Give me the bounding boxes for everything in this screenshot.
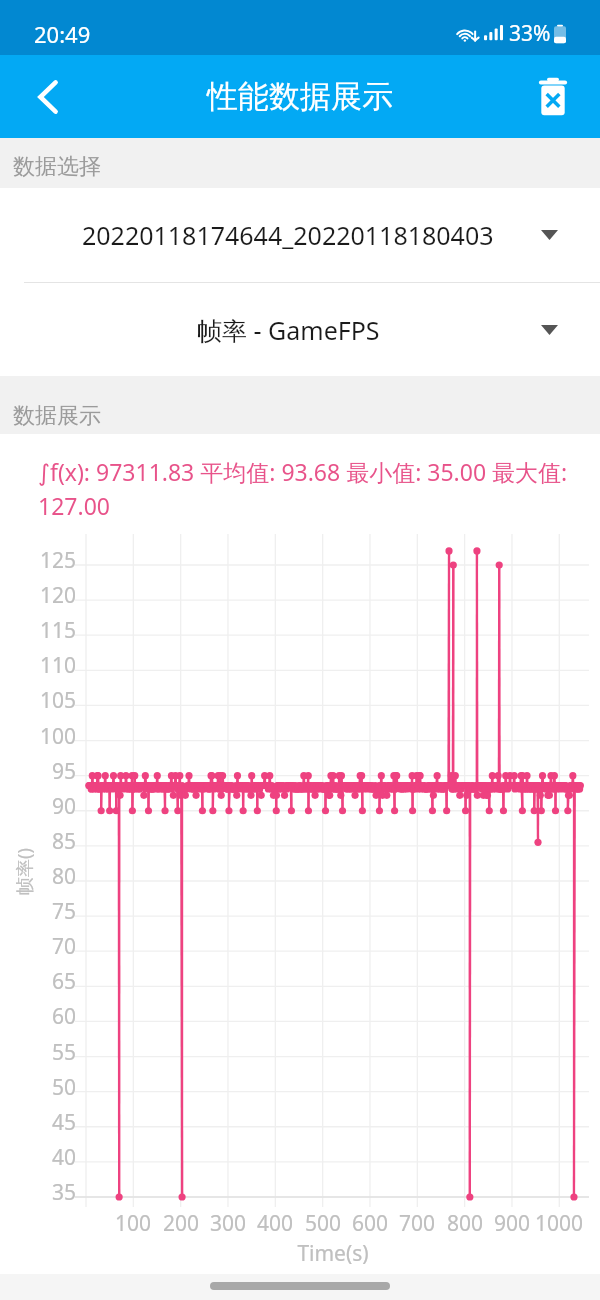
staticText: 200 xyxy=(146,1209,216,1238)
button[interactable]: Delete xyxy=(506,55,600,138)
staticText: 40 xyxy=(18,1143,76,1172)
staticText: 600 xyxy=(335,1209,405,1238)
staticText: 33% xyxy=(509,19,551,48)
staticText: 300 xyxy=(193,1209,263,1238)
staticText: 110 xyxy=(18,651,76,680)
staticText: 20220118174644_20220118180403 xyxy=(82,218,494,252)
staticText: 105 xyxy=(18,686,76,715)
staticText: 100 xyxy=(98,1209,168,1238)
button[interactable]: Back xyxy=(0,55,96,138)
staticText: 400 xyxy=(240,1209,310,1238)
staticText: 95 xyxy=(18,757,76,786)
staticText: 75 xyxy=(18,897,76,926)
staticText: 800 xyxy=(430,1209,500,1238)
staticText: 65 xyxy=(18,967,76,996)
staticText: 数据展示 xyxy=(13,402,101,430)
button[interactable]: 20220118174644_20220118180403 xyxy=(0,188,600,282)
staticText: 120 xyxy=(18,581,76,610)
staticText: 性能数据展示 xyxy=(207,77,393,116)
staticText: 80 xyxy=(18,862,76,891)
staticText: 90 xyxy=(18,792,76,821)
staticText: 50 xyxy=(18,1073,76,1102)
staticText: 45 xyxy=(18,1108,76,1137)
staticText: 1000 xyxy=(524,1209,594,1238)
staticText: 125 xyxy=(18,546,76,575)
staticText: 20:49 xyxy=(34,19,91,49)
button[interactable]: 帧率 - GameFPS xyxy=(0,283,600,376)
staticText: 500 xyxy=(288,1209,358,1238)
staticText: 数据选择 xyxy=(13,153,101,181)
staticText: Time(s) xyxy=(233,1239,433,1268)
staticText: 60 xyxy=(18,1002,76,1031)
staticText: 35 xyxy=(18,1178,76,1207)
staticText: 85 xyxy=(18,827,76,856)
staticText: 115 xyxy=(18,616,76,645)
staticText: 100 xyxy=(18,722,76,751)
staticText: ∫f(x): 97311.83 平均值: 93.68 最小值: 35.00 最大… xyxy=(38,456,568,522)
staticText: 帧率() xyxy=(12,848,37,895)
staticText: 55 xyxy=(18,1038,76,1067)
staticText: 900 xyxy=(477,1209,547,1238)
staticText: 70 xyxy=(18,932,76,961)
staticText: 700 xyxy=(382,1209,452,1238)
staticText: 帧率 - GameFPS xyxy=(197,313,380,347)
